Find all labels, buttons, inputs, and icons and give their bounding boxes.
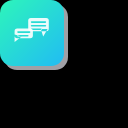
button[interactable]: Chat app icon bbox=[0, 0, 128, 128]
